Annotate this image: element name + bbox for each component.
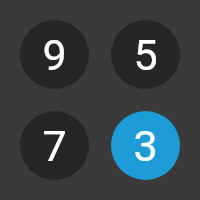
button[interactable]: Key 9 [20,20,89,89]
staticText: 3 [133,121,158,171]
button[interactable]: Key 7 [20,111,89,180]
staticText: 9 [42,30,67,80]
staticText: 5 [133,30,158,80]
staticText: 7 [42,121,67,171]
button[interactable]: Key 3 [111,111,180,180]
button[interactable]: Key 5 [111,20,180,89]
